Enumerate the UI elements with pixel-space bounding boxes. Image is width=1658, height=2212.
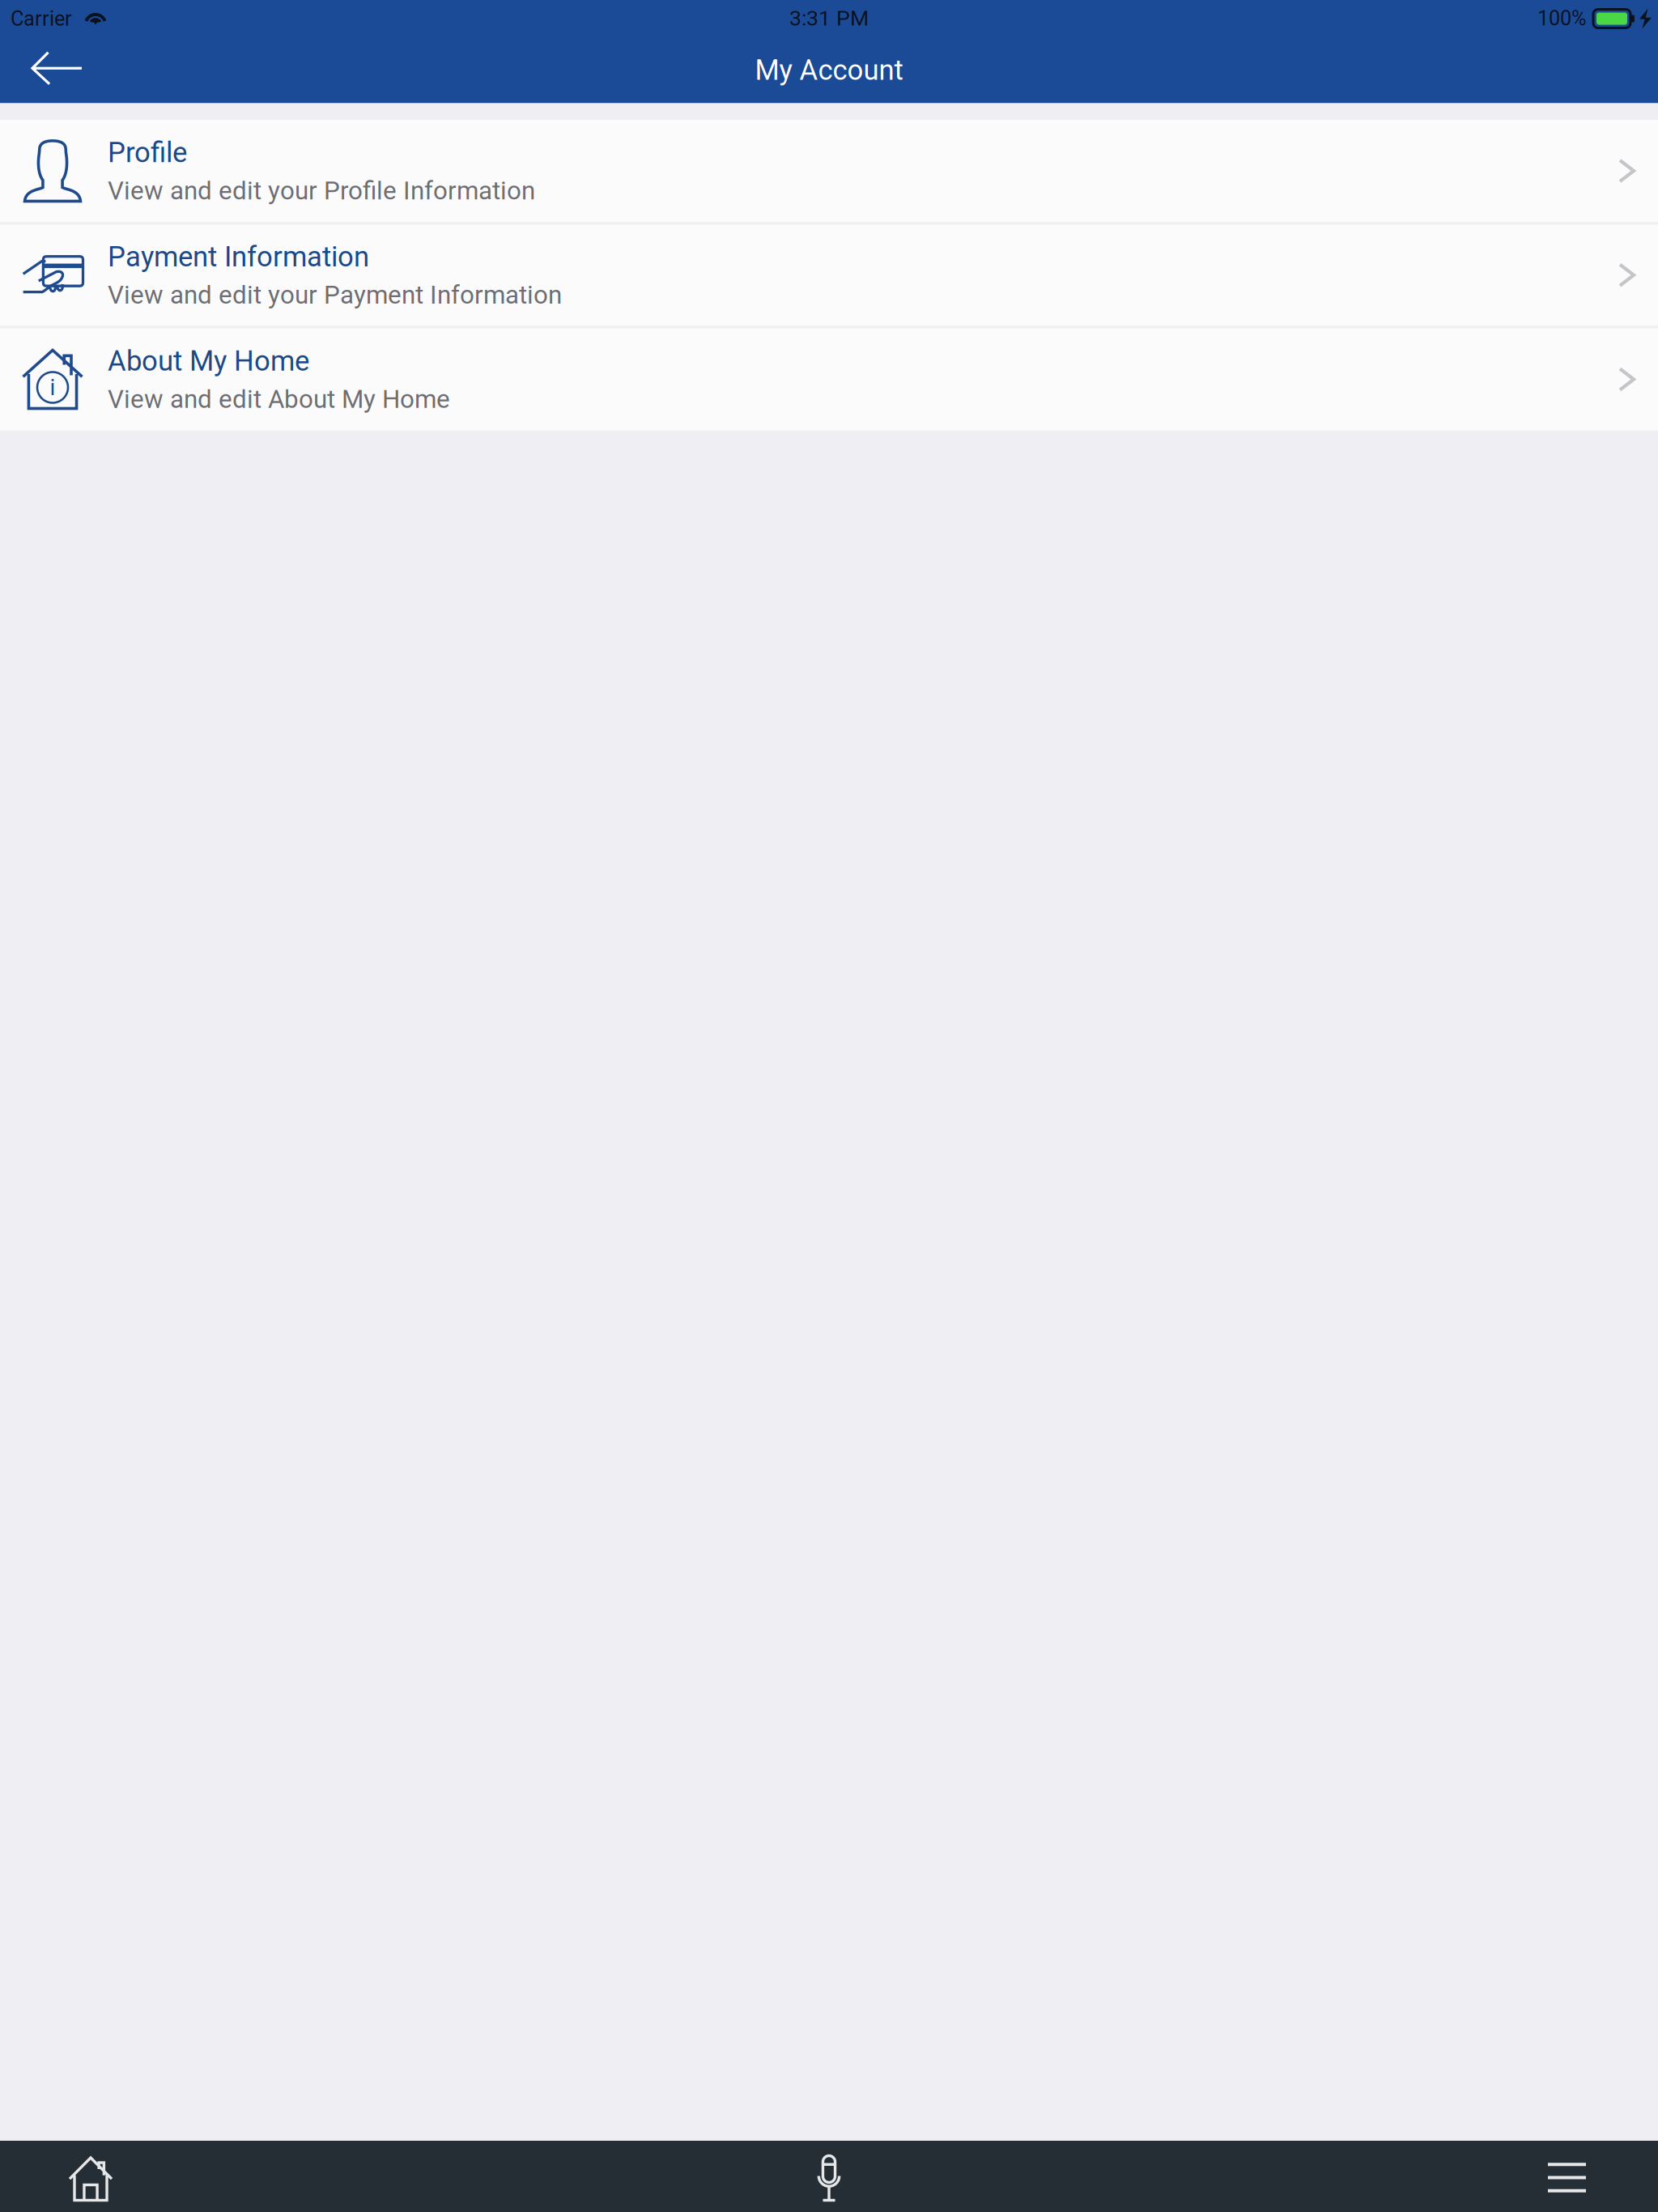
staticText: About My Home [108,345,309,377]
staticText: Profile [108,136,187,169]
staticText: Carrier [11,7,72,31]
staticText: My Account [755,54,903,87]
staticText: View and edit About My Home [108,384,450,414]
button[interactable]: Voice search [770,2141,888,2212]
button[interactable]: Payment Information [0,225,1658,325]
staticText: i [50,374,55,401]
staticText: View and edit your Profile Information [108,176,535,206]
staticText: Payment Information [108,240,369,273]
button[interactable]: i [0,328,1658,430]
button[interactable]: Menu [1516,2141,1658,2212]
button[interactable]: Profile [0,120,1658,222]
button[interactable]: Home [0,2141,144,2212]
staticText: View and edit your Payment Information [108,280,562,310]
staticText: 3:31 PM [789,6,869,31]
button[interactable]: Back [0,37,103,103]
staticText: 100% [1537,6,1587,30]
